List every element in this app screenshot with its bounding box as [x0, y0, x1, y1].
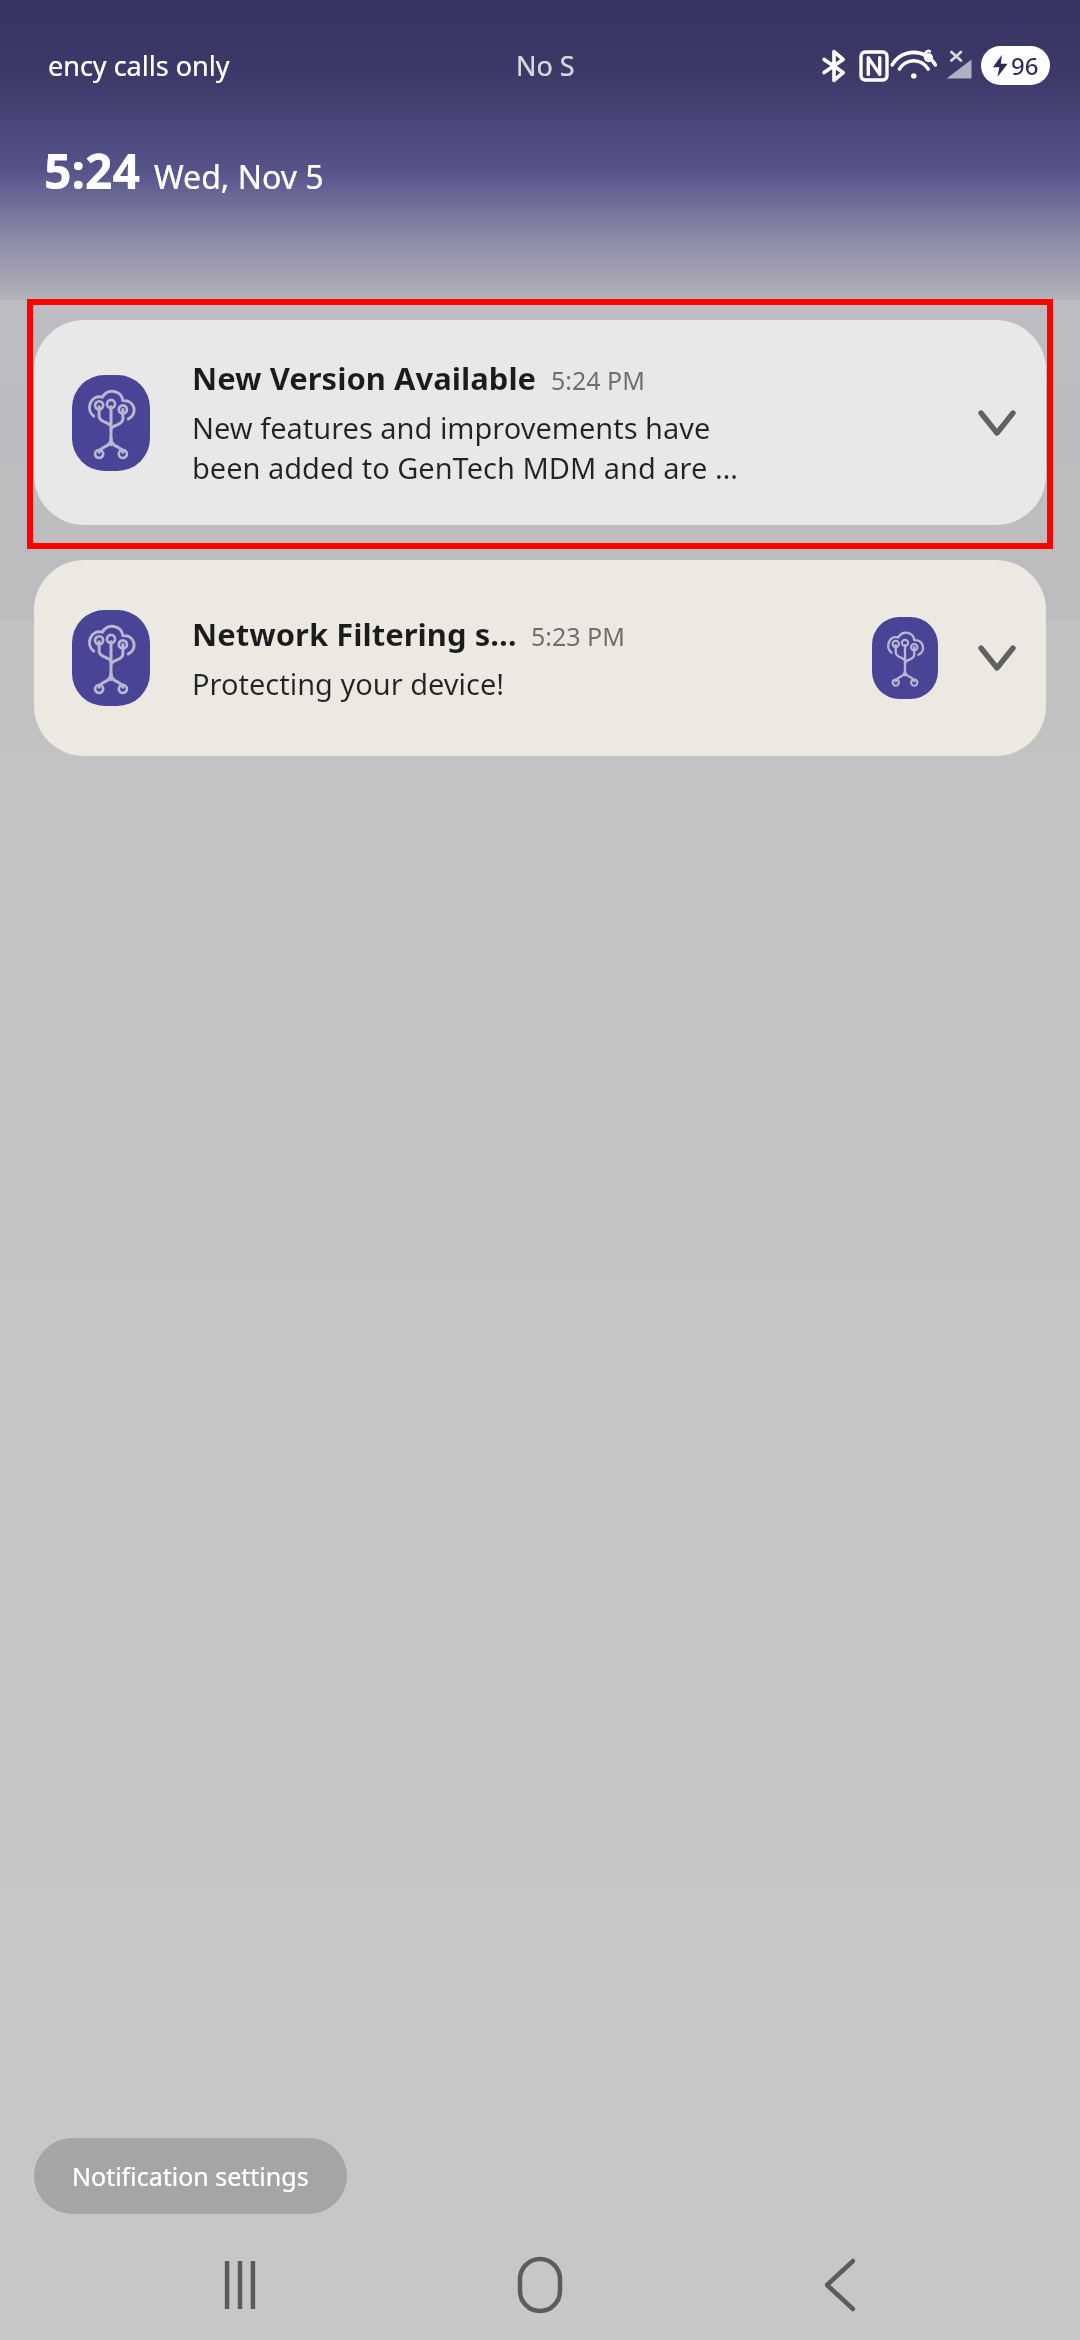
button[interactable]: Home: [480, 2230, 600, 2340]
staticText: No S: [516, 47, 575, 84]
staticText: 5:24 PM: [551, 363, 645, 397]
button[interactable]: Recent apps: [180, 2230, 300, 2340]
staticText: New Version Available: [192, 357, 537, 399]
button[interactable]: Expand notification: [962, 623, 1032, 693]
staticText: 5:23 PM: [531, 619, 625, 653]
staticText: 96: [1011, 49, 1039, 82]
button[interactable]: Expand notification: [962, 388, 1032, 458]
button[interactable]: Network Filtering s…: [34, 560, 1046, 756]
button[interactable]: New Version Available: [34, 320, 1046, 525]
staticText: New features and improvements have been …: [192, 408, 738, 488]
staticText: 5:24: [44, 138, 140, 203]
staticText: Wed, Nov 5: [154, 155, 324, 199]
staticText: Protecting your device!: [192, 664, 505, 703]
staticText: ency calls only: [48, 47, 230, 84]
staticText: Notification settings: [72, 2159, 309, 2193]
button[interactable]: Back: [780, 2230, 900, 2340]
staticText: Network Filtering s…: [192, 613, 517, 655]
button[interactable]: Notification settings: [34, 2138, 347, 2214]
